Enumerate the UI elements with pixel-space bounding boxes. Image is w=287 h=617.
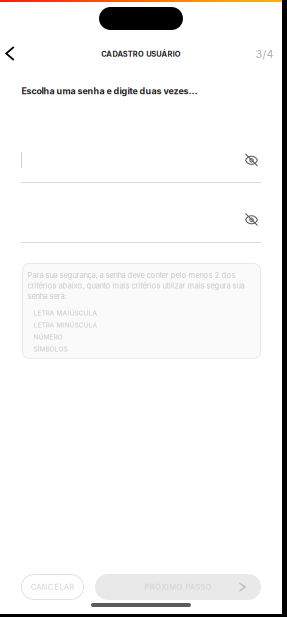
button[interactable]: Voltar [0,38,25,68]
staticText: NÚMERO [33,333,62,341]
button[interactable]: CANCELAR [21,574,84,600]
staticText: CANCELAR [31,582,74,592]
staticText: LETRA MAIÚSCULA [33,309,97,317]
staticText: LETRA MINÚSCULA [33,321,97,329]
staticText: critérios abaixo, quanto mais critérios … [27,281,244,290]
staticText: senha será: [27,292,66,301]
button[interactable]: Mostrar confirmação de senha [238,207,264,231]
staticText: SÍMBOLOS [33,345,67,353]
staticText: CADASTRO USUÁRIO [101,49,181,58]
staticText: Para sua segurança, a senha deve conter … [27,271,235,280]
staticText: Escolha uma senha e digite duas vezes... [21,86,197,96]
staticText: PRÓXIMO PASSO [144,582,212,592]
button[interactable]: PRÓXIMO PASSO [95,574,261,600]
button[interactable]: Mostrar senha [238,148,264,172]
staticText: 3/4 [255,47,273,60]
